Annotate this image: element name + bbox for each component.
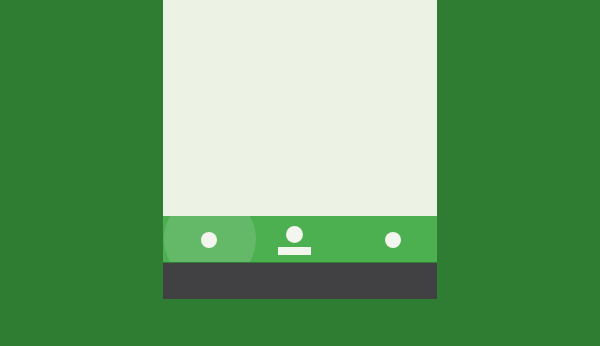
button[interactable]: Profile	[254, 216, 346, 262]
button[interactable]: More	[346, 216, 437, 262]
button[interactable]: Home	[163, 216, 254, 262]
